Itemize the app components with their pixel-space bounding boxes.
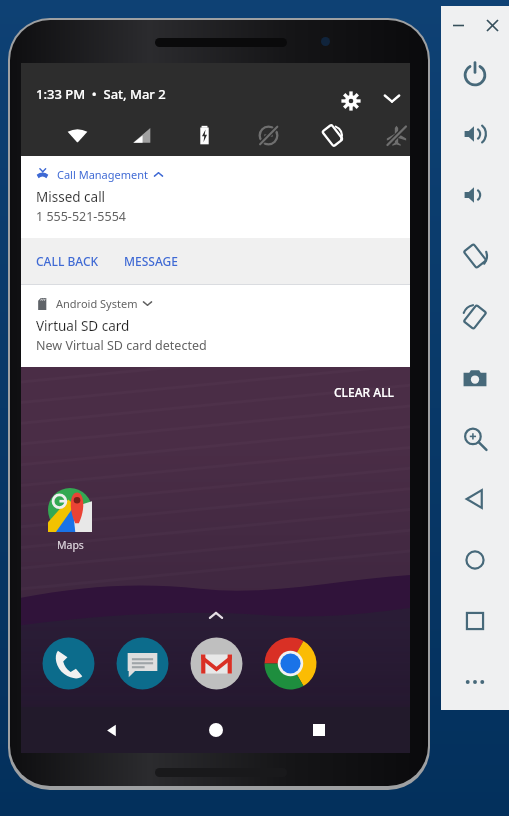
button[interactable]: Mobile data: [120, 114, 162, 156]
button[interactable]: Gmail: [190, 637, 243, 690]
button[interactable]: CLEAR ALL: [318, 377, 410, 407]
button[interactable]: Back: [455, 479, 495, 519]
staticText: Missed call: [36, 188, 106, 206]
staticText: Call Management: [57, 167, 149, 182]
button[interactable]: Airplane mode: [375, 114, 417, 156]
button[interactable]: Do not disturb: [247, 114, 289, 156]
button[interactable]: Rotate right: [455, 297, 495, 337]
button[interactable]: Zoom: [455, 419, 495, 459]
staticText: New Virtual SD card detected: [36, 337, 207, 354]
button[interactable]: Android System: [21, 285, 410, 367]
staticText: 1 555-521-5554: [36, 208, 126, 225]
button[interactable]: Call Management: [21, 156, 410, 238]
staticText: Maps: [57, 538, 84, 552]
button[interactable]: MESSAGE: [114, 244, 188, 278]
staticText: MESSAGE: [124, 253, 178, 269]
button[interactable]: Overview: [455, 601, 495, 641]
button[interactable]: Settings: [329, 79, 373, 123]
staticText: CALL BACK: [36, 253, 99, 269]
button[interactable]: Chrome: [264, 637, 317, 690]
button[interactable]: Home: [193, 707, 239, 753]
staticText: Android System: [56, 296, 138, 311]
button[interactable]: Maps: [44, 484, 96, 556]
button[interactable]: Auto rotate: [311, 114, 353, 156]
other: All apps: [208, 608, 224, 624]
button[interactable]: Messages: [116, 637, 169, 690]
button[interactable]: Recents: [296, 707, 342, 753]
button[interactable]: Minimize: [445, 12, 471, 38]
staticText: CLEAR ALL: [334, 384, 394, 400]
button[interactable]: Volume down: [455, 175, 495, 215]
button[interactable]: Collapse: [373, 79, 411, 117]
button[interactable]: Volume up: [455, 114, 495, 154]
button[interactable]: Phone: [42, 637, 95, 690]
button[interactable]: Power: [455, 54, 495, 94]
button[interactable]: Rotate left: [455, 236, 495, 276]
button[interactable]: Wi-Fi: [56, 114, 98, 156]
button[interactable]: Back: [89, 707, 135, 753]
button[interactable]: Close: [479, 12, 505, 38]
button[interactable]: Screenshot: [455, 358, 495, 398]
button[interactable]: More: [455, 662, 495, 702]
button[interactable]: Battery: [183, 114, 225, 156]
button[interactable]: CALL BACK: [21, 244, 114, 278]
staticText: 1:33 PM • Sat, Mar 2: [36, 85, 166, 103]
button[interactable]: Home: [455, 540, 495, 580]
staticText: Virtual SD card: [36, 317, 130, 335]
